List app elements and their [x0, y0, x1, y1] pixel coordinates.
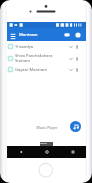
button[interactable]: More options	[74, 41, 80, 52]
staticText: Shiva Panchakshara	[15, 53, 53, 58]
button[interactable]: Account	[72, 28, 83, 41]
staticText: Stotram	[15, 58, 31, 63]
button[interactable]: Home	[34, 146, 60, 158]
button[interactable]: Expand	[67, 53, 74, 64]
button[interactable]: Back	[7, 146, 34, 158]
button[interactable]: Play music	[70, 121, 81, 132]
staticText: Music Player	[36, 125, 58, 130]
button[interactable]: Messages	[61, 28, 72, 41]
button[interactable]: Expand	[67, 41, 74, 52]
staticText: Gayatri Mantram	[15, 67, 47, 72]
button[interactable]: Recent apps	[60, 146, 86, 158]
button[interactable]: More options	[74, 53, 80, 64]
staticText: Ads by Google	[40, 142, 53, 147]
button[interactable]: Trisandya	[7, 41, 86, 52]
button[interactable]: Navigation menu	[7, 28, 19, 41]
button[interactable]: More options	[74, 64, 80, 75]
button[interactable]: Expand	[67, 64, 74, 75]
staticText: Mantram	[19, 32, 38, 38]
staticText: Trisandya	[15, 44, 34, 49]
button[interactable]: Gayatri Mantram	[7, 64, 86, 75]
button[interactable]: Shiva Panchakshara	[7, 52, 86, 64]
